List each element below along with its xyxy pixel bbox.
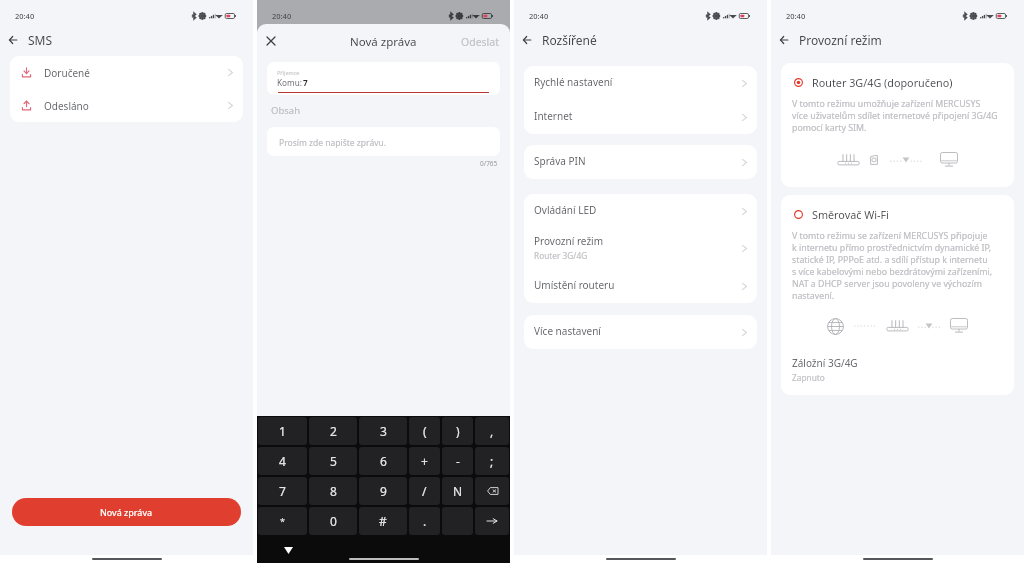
button[interactable]: / (409, 477, 440, 505)
staticText: V tomto režimu umožňuje zařízení MERCUSY… (792, 98, 998, 134)
button[interactable]: Internet (524, 100, 757, 134)
button[interactable]: 3 (359, 417, 407, 445)
button[interactable]: Směrovač Wi-Fi (781, 195, 1014, 395)
staticText: N (453, 483, 463, 499)
staticText: 5 (330, 453, 337, 469)
button[interactable]: Provozní režim (524, 228, 757, 269)
button[interactable]: . (409, 507, 440, 535)
staticText: ( (423, 423, 427, 439)
staticText: 8 (330, 483, 337, 499)
staticText: 20:40 (272, 11, 292, 21)
button[interactable]: - (442, 447, 473, 475)
staticText: 7 (303, 77, 308, 88)
staticText: / (422, 483, 427, 499)
button[interactable]: 6 (359, 447, 407, 475)
staticText: Odesláno (44, 99, 89, 113)
button[interactable]: ; (475, 447, 509, 475)
staticText: 0 (330, 513, 337, 529)
other: Backspace (487, 487, 498, 495)
staticText: Doručené (44, 66, 90, 80)
staticText: Správa PIN (534, 154, 586, 168)
staticText: ) (456, 423, 460, 439)
staticText: . (423, 513, 427, 529)
staticText: Rozšířené (542, 32, 597, 48)
button[interactable]: Backspace (475, 477, 509, 505)
button[interactable]: , (475, 417, 509, 445)
button[interactable]: * (258, 507, 307, 535)
button[interactable]: N (442, 477, 473, 505)
staticText: - (456, 453, 460, 469)
staticText: 0/765 (480, 159, 498, 168)
button[interactable]: # (359, 507, 407, 535)
staticText: 7 (279, 483, 286, 499)
staticText: Provozní režim (534, 234, 604, 248)
staticText: + (421, 453, 428, 469)
button[interactable]: 2 (309, 417, 357, 445)
button[interactable]: Správa PIN (524, 145, 757, 179)
button[interactable]: ) (442, 417, 473, 445)
button[interactable]: + (409, 447, 440, 475)
staticText: Směrovač Wi-Fi (812, 207, 889, 222)
staticText: , (490, 423, 494, 439)
button[interactable]: Ovládání LED (524, 194, 757, 228)
staticText: Zapnuto (792, 372, 825, 383)
staticText: 20:40 (529, 11, 549, 21)
button[interactable]: 8 (309, 477, 357, 505)
staticText: 2 (330, 423, 337, 439)
other: Enter (487, 517, 497, 525)
staticText: Nová zpráva (100, 506, 153, 518)
staticText: Příjemce (277, 69, 300, 76)
staticText: Prosím zde napište zprávu. (279, 137, 387, 149)
staticText: Rychlé nastavení (534, 75, 613, 89)
staticText: * (280, 515, 285, 527)
staticText: Nová zpráva (350, 34, 417, 50)
staticText: 20:40 (786, 11, 806, 21)
staticText: Internet (534, 109, 573, 123)
staticText: ; (490, 453, 494, 469)
staticText: Ovládání LED (534, 203, 597, 217)
staticText: 6 (380, 453, 387, 469)
button[interactable]: 4 (258, 447, 307, 475)
other: Hide keyboard (284, 547, 293, 554)
staticText: Umístění routeru (534, 278, 615, 292)
staticText: Více nastavení (534, 324, 601, 338)
staticText: SMS (28, 32, 53, 48)
button[interactable]: Nová zpráva (12, 498, 241, 526)
staticText: Router 3G/4G (doporučeno) (812, 75, 953, 90)
staticText: 3 (380, 423, 387, 439)
button[interactable]: ( (409, 417, 440, 445)
button[interactable]: Doručené (10, 56, 243, 89)
staticText: Záložní 3G/4G (792, 356, 858, 370)
staticText: 1 (279, 423, 286, 439)
button[interactable]: Close (267, 37, 275, 45)
staticText: 20:40 (15, 11, 35, 21)
staticText: Obsah (271, 104, 301, 117)
button[interactable]: Umístění routeru (524, 269, 757, 303)
button[interactable]: 0 (309, 507, 357, 535)
staticText: Router 3G/4G (534, 250, 588, 261)
button[interactable]: Enter (475, 507, 509, 535)
button[interactable]: Rychlé nastavení (524, 66, 757, 100)
staticText: V tomto režimu se zařízení MERCUSYS přip… (792, 230, 993, 302)
staticText: 9 (380, 483, 387, 499)
button[interactable]: 1 (258, 417, 307, 445)
button[interactable]: 7 (258, 477, 307, 505)
staticText: # (379, 513, 387, 529)
button[interactable]: 9 (359, 477, 407, 505)
staticText: Komu: (277, 77, 302, 88)
staticText: Provozní režim (799, 32, 882, 48)
staticText: 4 (279, 453, 286, 469)
button[interactable]: Více nastavení (524, 315, 757, 349)
button[interactable]: 5 (309, 447, 357, 475)
button[interactable]: Back (9, 36, 17, 44)
button[interactable]: Back (523, 36, 531, 44)
button[interactable]: Odeslat (461, 35, 499, 49)
button[interactable]: Odesláno (10, 89, 243, 122)
button[interactable]: Router 3G/4G (doporučeno) (781, 63, 1014, 187)
button[interactable]: Back (780, 36, 788, 44)
